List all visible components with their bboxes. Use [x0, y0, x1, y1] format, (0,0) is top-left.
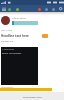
button[interactable]: Item	[51, 7, 55, 11]
staticText: Headline text here	[1, 34, 29, 38]
staticText: Advertisement	[0, 86, 14, 88]
button[interactable]	[42, 34, 48, 38]
staticText: baroufnews.com	[23, 95, 42, 98]
button[interactable]: Item	[44, 7, 48, 11]
staticText: $ npm install	[2, 48, 15, 51]
button[interactable]: Item	[37, 7, 41, 11]
button[interactable]: Menu	[1, 6, 6, 11]
button[interactable]: Item	[7, 7, 11, 11]
staticText: Subtitle link	[1, 40, 14, 43]
button[interactable]: Item	[15, 7, 19, 11]
button[interactable]: Search	[58, 6, 63, 11]
staticText: Mar 4, 2024	[1, 29, 13, 32]
staticText: added 120 packages	[2, 52, 22, 55]
staticText: Author name	[12, 17, 26, 20]
